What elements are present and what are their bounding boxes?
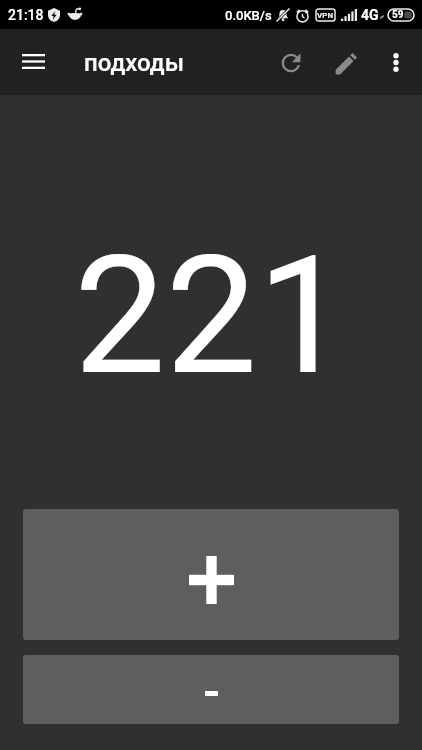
staticText: подходы xyxy=(84,49,184,77)
button[interactable]: Decrease count xyxy=(23,655,399,724)
staticText: 0.0KB/s xyxy=(225,8,272,23)
staticText: 4G xyxy=(361,7,379,23)
button[interactable]: Increase count xyxy=(23,509,399,640)
button[interactable]: Reset counter xyxy=(267,38,315,86)
button[interactable]: More options xyxy=(372,38,420,86)
button[interactable]: Edit xyxy=(322,38,370,86)
staticText: 21:18 xyxy=(8,7,44,23)
staticText: VPN xyxy=(317,11,334,20)
staticText: 59 xyxy=(392,9,404,21)
button[interactable]: Open navigation drawer xyxy=(9,38,57,86)
staticText: 221 xyxy=(74,221,349,412)
